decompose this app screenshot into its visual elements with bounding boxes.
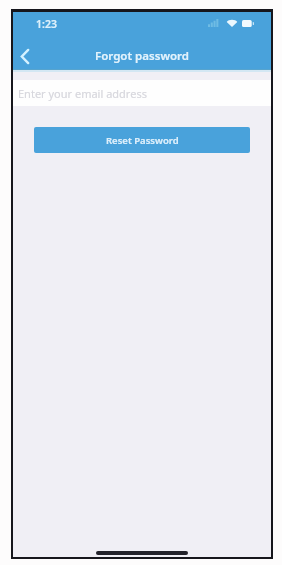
button[interactable]: Reset Password	[34, 127, 250, 153]
staticText: Forgot password	[95, 48, 189, 64]
staticText: Enter your email address	[18, 86, 147, 101]
button[interactable]: Enter your email address	[13, 80, 271, 106]
staticText: Reset Password	[106, 134, 179, 147]
button[interactable]: Back	[15, 43, 35, 69]
staticText: 1:23	[36, 17, 57, 31]
